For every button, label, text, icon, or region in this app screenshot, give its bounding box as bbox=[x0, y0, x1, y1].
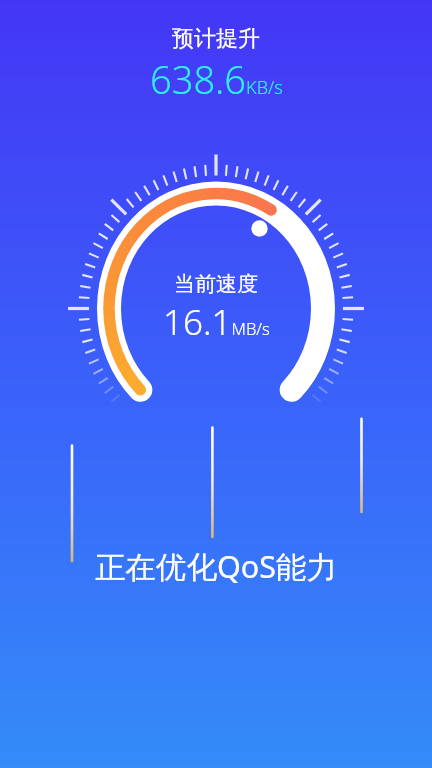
staticText: 当前速度 bbox=[174, 271, 258, 297]
staticText: 638.6KB/s bbox=[150, 53, 283, 105]
staticText: 预计提升 bbox=[172, 25, 260, 53]
staticText: 16.1MB/s bbox=[163, 298, 270, 346]
staticText: 正在优化QoS能力 bbox=[95, 545, 338, 587]
